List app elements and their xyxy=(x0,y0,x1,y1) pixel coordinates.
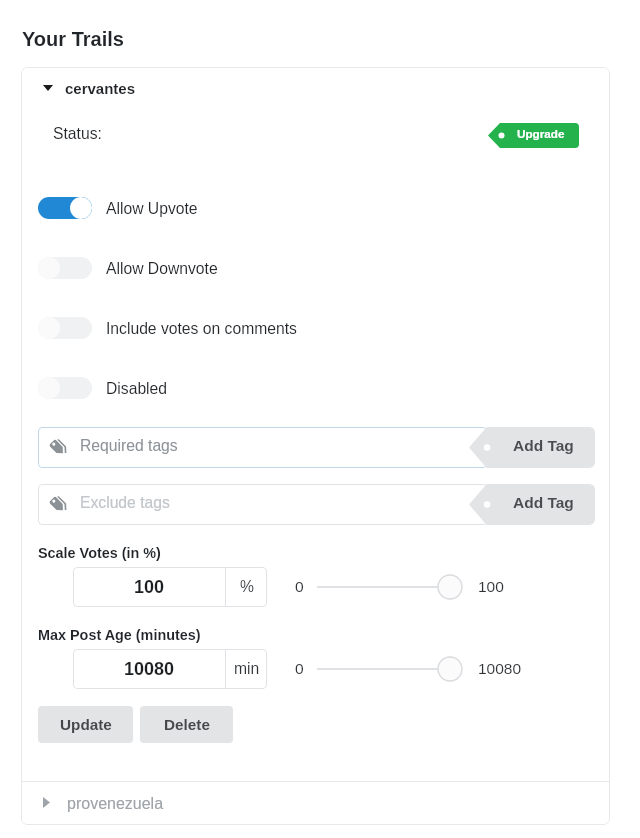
button[interactable]: 100 xyxy=(73,567,267,607)
staticText: Max Post Age (minutes) xyxy=(38,627,201,643)
button[interactable]: Allow Upvote xyxy=(21,186,610,230)
staticText: min xyxy=(234,660,260,678)
button[interactable]: cervantes xyxy=(21,67,610,110)
staticText: provenezuela xyxy=(67,795,164,813)
staticText: Status: xyxy=(53,125,102,143)
staticText: Exclude tags xyxy=(80,494,170,512)
button[interactable]: Update xyxy=(38,706,133,743)
staticText: Required tags xyxy=(80,437,178,455)
button[interactable]: Required tags xyxy=(38,427,487,468)
staticText: Include votes on comments xyxy=(106,320,297,338)
staticText: Scale Votes (in %) xyxy=(38,545,161,561)
button[interactable]: Add Tag xyxy=(469,484,595,525)
button[interactable]: Slider xyxy=(315,573,463,601)
button[interactable]: Include votes on comments xyxy=(21,306,610,350)
button[interactable]: Add Tag xyxy=(469,427,595,468)
staticText: Add Tag xyxy=(513,437,574,454)
staticText: Allow Downvote xyxy=(106,260,218,278)
staticText: Upgrade xyxy=(517,127,565,140)
button[interactable]: Allow Downvote xyxy=(21,246,610,290)
button[interactable]: 10080 xyxy=(73,649,267,689)
staticText: 100 xyxy=(134,577,165,597)
button[interactable]: Disabled xyxy=(21,366,610,410)
button[interactable]: provenezuela xyxy=(21,782,610,825)
staticText: 0 xyxy=(295,660,304,677)
staticText: 100 xyxy=(478,578,504,595)
button[interactable]: Upgrade xyxy=(488,123,579,148)
staticText: 0 xyxy=(295,578,304,595)
staticText: 10080 xyxy=(124,659,175,679)
staticText: % xyxy=(240,578,254,596)
staticText: 10080 xyxy=(478,660,522,677)
button[interactable]: Exclude tags xyxy=(38,484,487,525)
staticText: Delete xyxy=(164,716,210,733)
button[interactable]: Slider xyxy=(315,655,463,683)
staticText: Allow Upvote xyxy=(106,200,198,218)
button[interactable]: Delete xyxy=(140,706,233,743)
staticText: Add Tag xyxy=(513,494,574,511)
staticText: Disabled xyxy=(106,380,168,398)
staticText: cervantes xyxy=(65,80,136,97)
staticText: Update xyxy=(60,716,112,733)
staticText: Your Trails xyxy=(22,28,124,50)
